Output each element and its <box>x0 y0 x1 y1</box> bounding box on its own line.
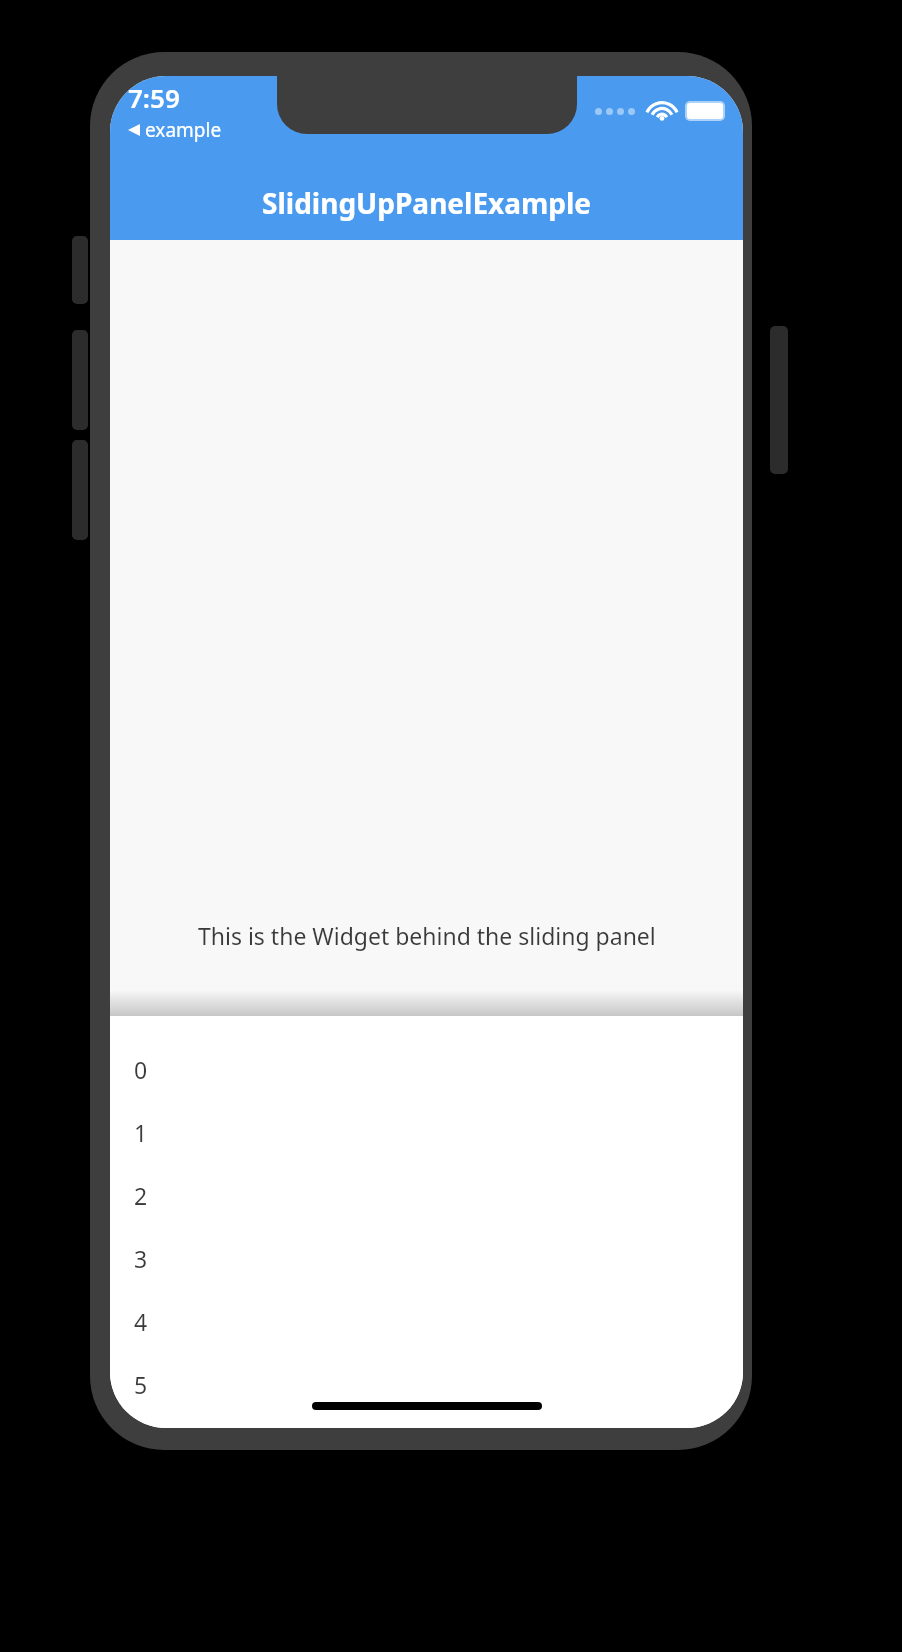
button[interactable]: 3 <box>110 1227 743 1290</box>
staticText: 4 <box>134 1306 148 1337</box>
staticText: 0 <box>134 1054 148 1085</box>
staticText: 7:59 <box>128 80 180 115</box>
button[interactable]: 1 <box>110 1101 743 1164</box>
staticText: This is the Widget behind the sliding pa… <box>198 920 656 951</box>
button[interactable]: 5 <box>110 1353 743 1416</box>
staticText: 1 <box>134 1117 148 1148</box>
staticText: 2 <box>134 1180 148 1211</box>
staticText: 5 <box>134 1369 148 1400</box>
button[interactable]: 4 <box>110 1290 743 1353</box>
button[interactable]: example <box>128 117 222 143</box>
button[interactable]: 0 <box>110 1038 743 1101</box>
button[interactable]: 6 <box>110 1416 743 1428</box>
button[interactable]: 2 <box>110 1164 743 1227</box>
staticText: example <box>145 117 222 143</box>
staticText: SlidingUpPanelExample <box>262 184 592 222</box>
staticText: 3 <box>134 1243 148 1274</box>
